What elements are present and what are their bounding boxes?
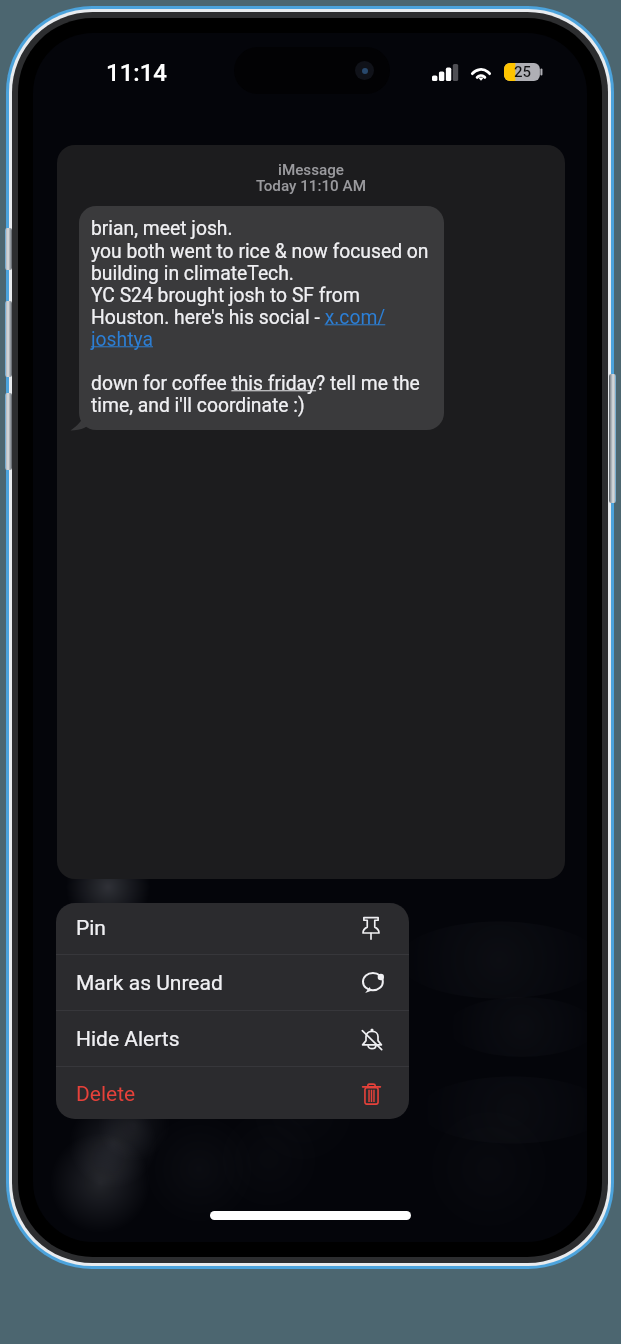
staticText: Delete xyxy=(76,1082,136,1107)
staticText: Today 11:10 AM xyxy=(256,177,366,195)
staticText: Pin xyxy=(76,916,106,941)
button[interactable]: Delete xyxy=(56,1068,409,1119)
staticText: Mark as Unread xyxy=(76,971,223,996)
button[interactable]: Pin xyxy=(56,903,409,954)
staticText: iMessage xyxy=(278,161,345,179)
staticText: brian, meet josh. you both went to rice … xyxy=(91,217,429,416)
staticText: Hide Alerts xyxy=(76,1027,180,1052)
staticText: 11:14 xyxy=(106,59,167,87)
button[interactable]: Mark as Unread xyxy=(56,955,409,1011)
staticText: 25 xyxy=(514,63,532,81)
button[interactable]: Hide Alerts xyxy=(56,1012,409,1067)
